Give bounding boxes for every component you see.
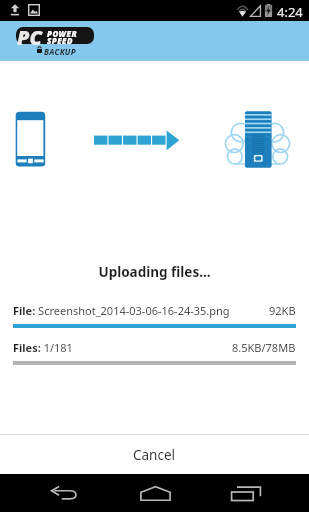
staticText: BACKUP (44, 46, 76, 57)
button[interactable]: Home (109, 474, 201, 512)
staticText: 8.5KB/78MB (232, 340, 296, 355)
button[interactable]: Recent apps (200, 474, 292, 512)
staticText: 4:24 (277, 3, 303, 21)
staticText: SPEED (47, 35, 73, 46)
staticText: PC (17, 24, 43, 51)
button[interactable]: Cancel (0, 435, 309, 474)
staticText: File: Screenshot_2014-03-06-16-24-35.png (13, 303, 230, 318)
staticText: 92KB (269, 303, 296, 318)
staticText: Cancel (133, 446, 176, 464)
staticText: Files: 1/181 (13, 340, 73, 355)
staticText: POWER (47, 28, 77, 39)
staticText: Uploading files... (0, 263, 309, 281)
button[interactable]: Back (18, 474, 110, 512)
